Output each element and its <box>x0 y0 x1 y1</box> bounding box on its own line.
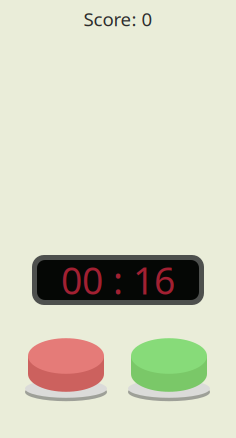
button[interactable]: Green button <box>0 0 236 438</box>
staticText: 00 : 16 <box>61 255 175 305</box>
staticText: Score: 0 <box>83 7 152 31</box>
button[interactable]: Red button <box>0 0 236 438</box>
